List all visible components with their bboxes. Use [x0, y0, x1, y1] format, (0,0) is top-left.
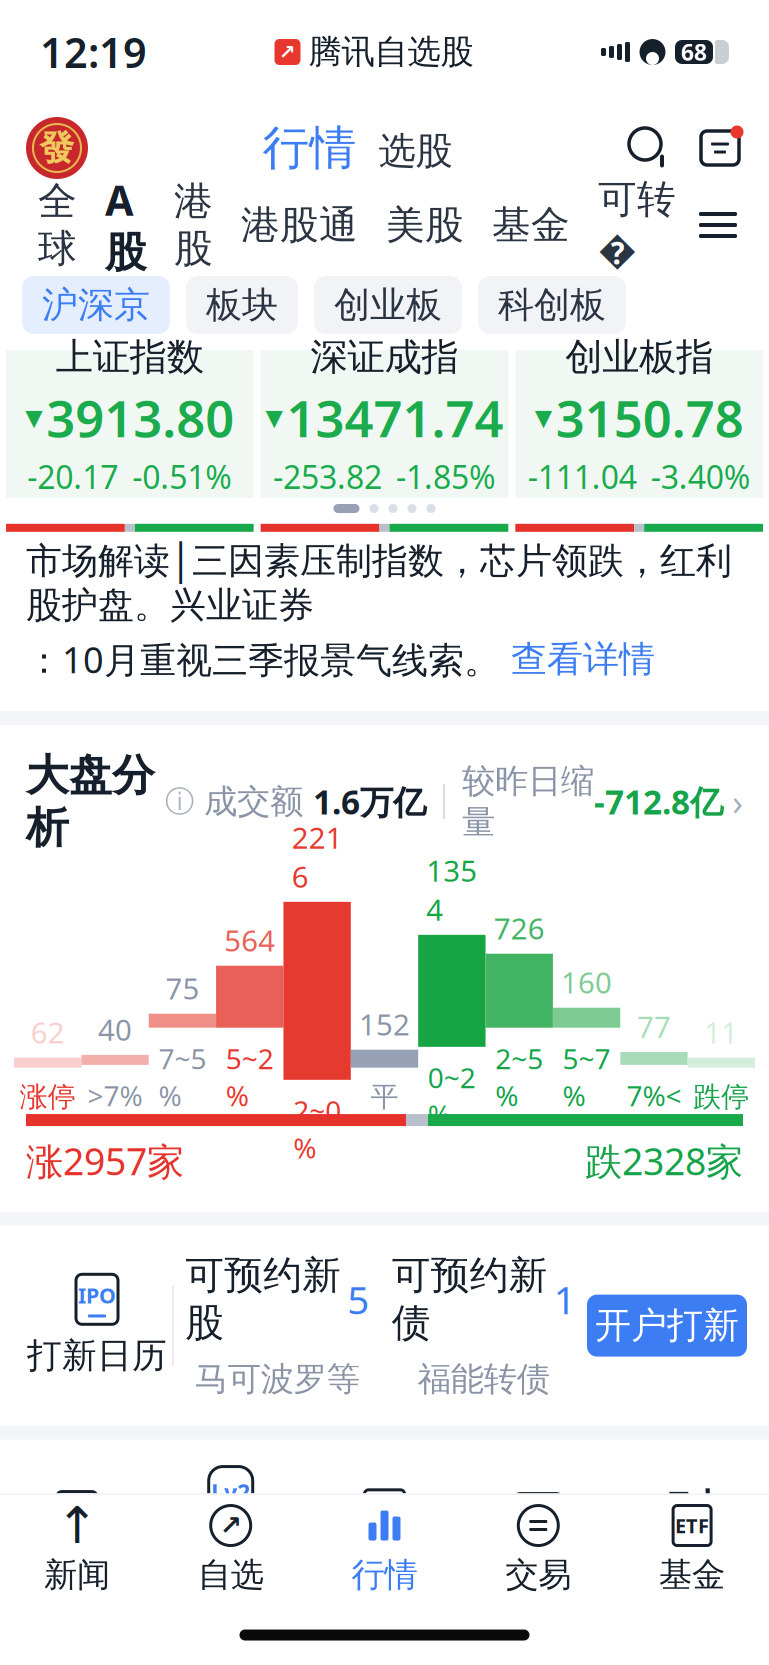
staticText: A股 — [105, 172, 146, 278]
button[interactable]: ↗ — [154, 1495, 308, 1605]
staticText: 港股 — [174, 177, 213, 272]
staticText: 基金 — [659, 1554, 725, 1595]
staticText: 75 — [165, 969, 199, 1008]
staticText: ↗ — [220, 1510, 242, 1541]
staticText: 2~0% — [293, 1092, 341, 1166]
button[interactable]: 深证成指 — [261, 350, 508, 498]
staticText: 沪深 Level2 — [179, 1534, 283, 1622]
button[interactable]: 行情 — [308, 1495, 461, 1605]
staticText: 可转� — [598, 176, 676, 274]
staticText: 40 — [98, 1010, 132, 1049]
staticText: 跌停 — [693, 1080, 749, 1114]
staticText: -253.82 — [273, 455, 382, 498]
staticText: 可预约新债 — [392, 1252, 548, 1347]
staticText: 港股通 — [241, 201, 358, 249]
button[interactable]: 国债理财 — [461, 1487, 615, 1599]
button[interactable]: 财 — [615, 1487, 769, 1599]
staticText: │ — [426, 785, 462, 818]
button[interactable]: 港股通 — [227, 201, 372, 249]
staticText: ETF — [366, 1500, 402, 1528]
staticText: 1 — [554, 1273, 576, 1325]
button[interactable]: 行情 — [262, 119, 356, 177]
staticText: 国债理财 — [468, 1557, 608, 1599]
staticText: 深证成指 — [310, 334, 458, 380]
button[interactable]: 消息 — [697, 125, 743, 171]
button[interactable]: 全球 — [24, 177, 91, 272]
staticText: -0.51% — [132, 455, 232, 498]
staticText: 12:19 — [40, 25, 147, 79]
button[interactable]: 创业板 — [314, 276, 462, 334]
button[interactable]: 板块 — [186, 276, 298, 334]
staticText: 68 — [681, 37, 707, 67]
staticText: 福能转债 — [418, 1359, 550, 1399]
staticText: 全球 — [38, 177, 77, 272]
staticText: 5~2% — [226, 1040, 274, 1114]
button[interactable]: 美股 — [372, 201, 478, 249]
staticText: 查看详情 — [511, 637, 655, 681]
staticText: ⓘ — [165, 784, 194, 820]
button[interactable]: 沪深京 — [22, 276, 170, 334]
staticText: 自选 — [198, 1554, 264, 1595]
staticText: -1.85% — [396, 455, 496, 498]
staticText: 3913.80 — [46, 384, 234, 451]
staticText: 打新日历 — [27, 1334, 167, 1377]
staticText: 基金 — [492, 201, 570, 249]
button[interactable]: Lv2 — [154, 1464, 308, 1622]
staticText: 3150.78 — [556, 384, 744, 451]
staticText: 上证指数 — [56, 334, 204, 380]
button[interactable]: 上证指数 — [6, 350, 254, 498]
staticText: ▼ — [265, 405, 282, 430]
button[interactable]: 交易 — [461, 1495, 615, 1605]
staticText: 11 — [704, 1013, 738, 1052]
staticText: 财报速递 — [622, 1557, 762, 1599]
staticText: 科创板 — [498, 283, 606, 327]
button[interactable]: 更多分类 — [691, 198, 745, 252]
button[interactable]: 大盘分析 — [0, 725, 769, 864]
staticText: 较昨日缩量 — [462, 761, 594, 843]
staticText: -20.17 — [27, 455, 118, 498]
button[interactable]: IPO — [22, 1274, 172, 1377]
staticText: 创业板指 — [565, 334, 713, 380]
staticText: Lv2 — [211, 1477, 250, 1508]
staticText: 發 — [39, 127, 74, 169]
staticText: 热门ETF — [321, 1555, 447, 1601]
staticText: 选股 — [378, 128, 452, 174]
staticText: 160 — [561, 963, 612, 1002]
button[interactable]: ETF — [308, 1485, 461, 1601]
button[interactable]: 市场解读│三因素压制指数，芯片领跌，红利股护盘。兴业证券 — [0, 513, 769, 711]
staticText: 62 — [31, 1013, 65, 1052]
button[interactable]: 活动 — [26, 117, 88, 179]
staticText: 市场解读│三因素压制指数，芯片领跌，红利股护盘。兴业证券 — [26, 539, 732, 627]
staticText: 726 — [494, 909, 545, 948]
staticText: 财 — [664, 1481, 720, 1550]
staticText: ETF — [675, 1512, 709, 1539]
staticText: 7~5% — [158, 1040, 206, 1114]
staticText: 腾讯自选股 — [308, 31, 473, 72]
button[interactable]: A股 — [91, 172, 160, 278]
staticText: ：10月重视三季报景气线索。 — [26, 635, 511, 683]
button[interactable]: 港股 — [160, 177, 227, 272]
button[interactable]: ↑ — [0, 1495, 154, 1605]
staticText: ↑ — [56, 1497, 98, 1554]
staticText: 美股 — [386, 201, 464, 249]
button[interactable]: 基金 — [478, 201, 584, 249]
staticText: 成交额 — [204, 781, 313, 822]
button[interactable]: 开户打新 — [587, 1295, 747, 1357]
staticText: 0~2% — [428, 1059, 476, 1133]
staticText: 沪深京 — [42, 283, 150, 327]
staticText: 行情 — [351, 1554, 417, 1595]
button[interactable]: 搜索 — [627, 126, 671, 170]
button[interactable]: 可预约新债 — [380, 1252, 587, 1399]
staticText: >7% — [87, 1077, 142, 1114]
button[interactable]: ETF — [615, 1495, 769, 1605]
button[interactable]: 龙虎榜 — [0, 1487, 154, 1599]
button[interactable]: 可预约新股 — [174, 1252, 380, 1399]
button[interactable]: 科创板 — [478, 276, 626, 334]
button[interactable]: 创业板指 — [515, 350, 763, 498]
staticText: 涨停 — [20, 1080, 76, 1114]
staticText: 2~5% — [495, 1040, 543, 1114]
button[interactable]: 选股 — [378, 122, 452, 174]
staticText: ↗ — [279, 41, 296, 63]
staticText: 创业板 — [334, 283, 442, 327]
staticText: 2216 — [292, 818, 343, 896]
